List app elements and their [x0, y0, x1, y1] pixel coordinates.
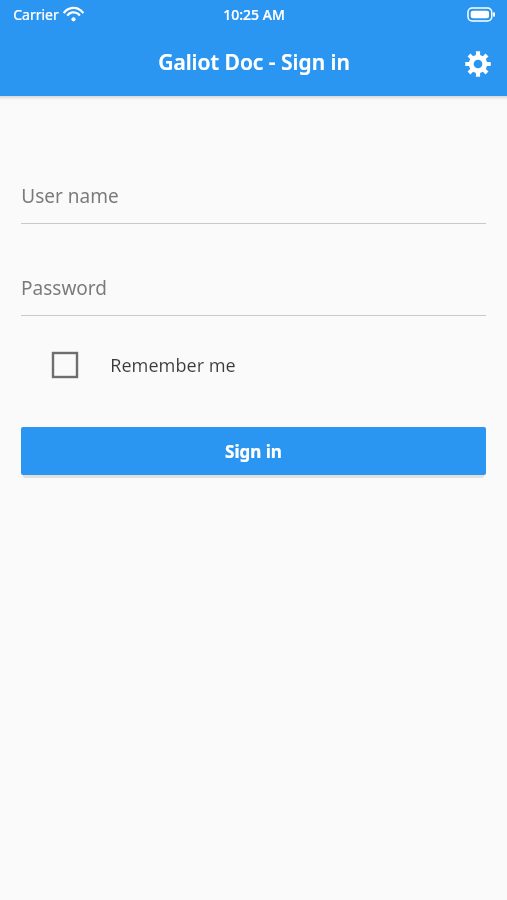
button[interactable]: Password	[21, 269, 486, 316]
staticText: Remember me	[110, 353, 236, 378]
staticText: 10:25 AM	[223, 5, 285, 24]
button[interactable]: Settings	[454, 40, 502, 88]
staticText: Galiot Doc - Sign in	[158, 48, 350, 77]
button[interactable]: Sign in	[21, 427, 486, 475]
staticText: Carrier	[13, 5, 59, 24]
staticText: User name	[21, 183, 119, 209]
button[interactable]: User name	[21, 177, 486, 224]
staticText: Sign in	[225, 440, 282, 463]
button[interactable]: Remember me	[21, 343, 486, 387]
staticText: Password	[21, 275, 107, 301]
